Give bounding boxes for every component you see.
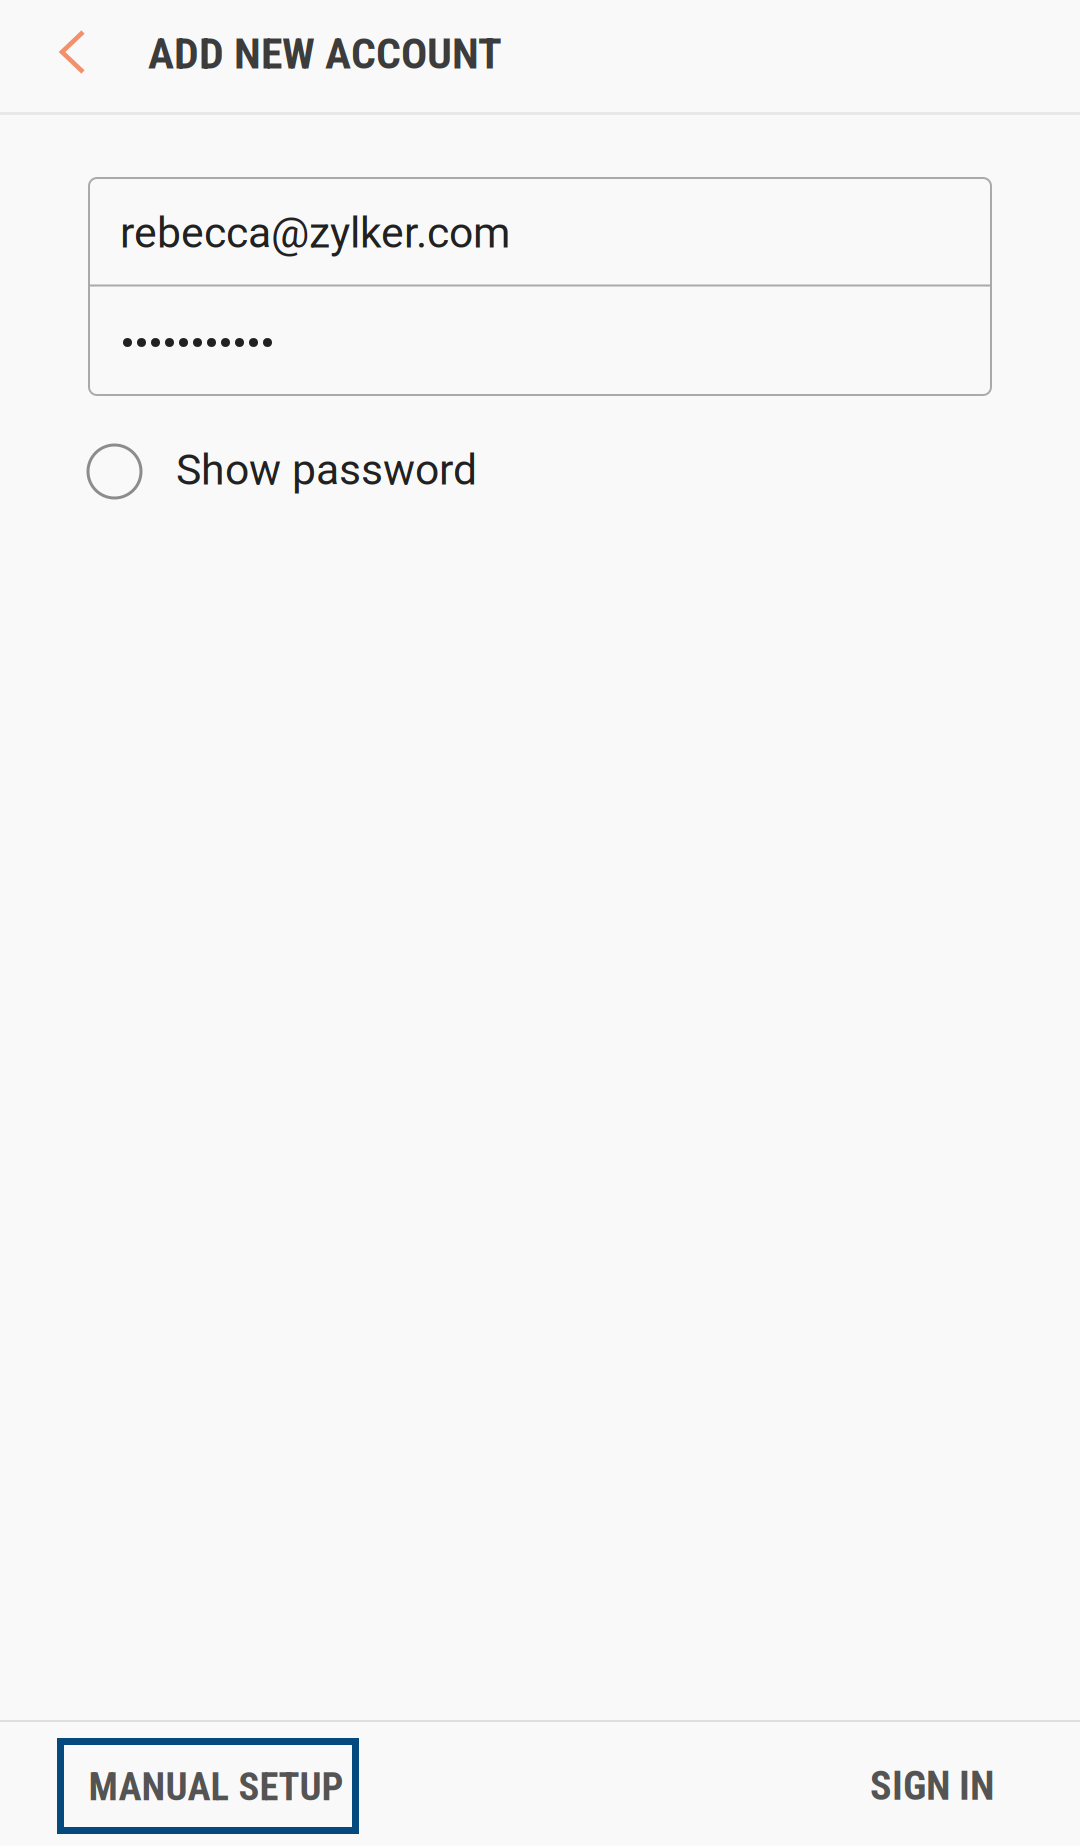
staticText: MANUAL SETUP — [88, 1764, 343, 1810]
button[interactable]: SIGN IN — [842, 1738, 1022, 1834]
button[interactable]: MANUAL SETUP — [57, 1738, 359, 1834]
staticText: SIGN IN — [870, 1763, 994, 1809]
button[interactable]: Back — [12, 0, 114, 113]
staticText: Show password — [176, 445, 477, 495]
button[interactable]: Show password — [86, 430, 506, 510]
staticText: ADD NEW ACCOUNT — [148, 29, 502, 79]
staticText: rebecca@zylker.com — [120, 208, 510, 258]
